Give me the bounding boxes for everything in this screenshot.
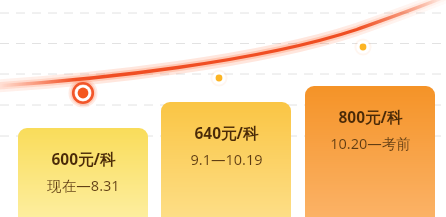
staticText: 800元/科 — [338, 106, 403, 127]
button[interactable]: Current price stage — [68, 78, 98, 108]
staticText: 640元/科 — [194, 122, 259, 143]
staticText: 现在—8.31 — [47, 175, 120, 195]
staticText: 9.1—10.19 — [190, 149, 263, 169]
button[interactable]: 600元/科 — [18, 128, 148, 217]
staticText: 600元/科 — [51, 148, 116, 169]
staticText: 10.20—考前 — [330, 133, 411, 153]
button[interactable]: 800元/科 — [305, 86, 435, 217]
button[interactable]: 640元/科 — [161, 102, 291, 217]
